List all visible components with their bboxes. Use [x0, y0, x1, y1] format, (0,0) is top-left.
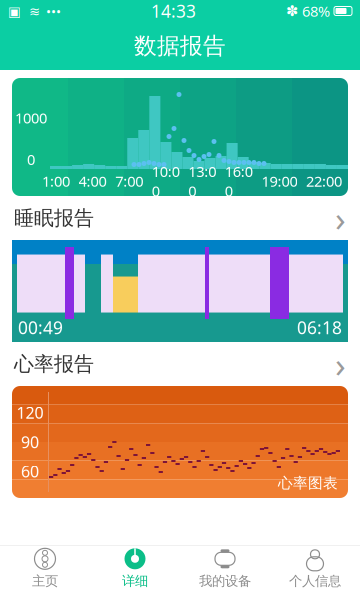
staticText: 120 — [16, 402, 43, 423]
button[interactable]: 睡眠报告 — [0, 196, 360, 240]
staticText: 0 — [27, 149, 35, 169]
staticText: 06:18 — [297, 316, 342, 339]
staticText: 个人信息 — [289, 573, 341, 589]
staticText: 详细 — [122, 573, 148, 589]
staticText: 60 — [21, 461, 39, 482]
button[interactable]: 心率报告 — [0, 342, 360, 386]
staticText: › — [335, 341, 346, 387]
staticText: 睡眠报告 — [14, 206, 94, 230]
staticText: 90 — [21, 431, 39, 453]
staticText: 16:00 — [225, 161, 253, 200]
staticText: 22:00 — [306, 171, 342, 191]
staticText: 数据报告 — [134, 32, 226, 60]
staticText: 4:00 — [79, 171, 107, 191]
staticText: 19:00 — [261, 171, 297, 191]
staticText: 心率图表 — [278, 474, 338, 492]
staticText: 7:00 — [115, 171, 143, 191]
staticText: 主页 — [32, 573, 58, 589]
staticText: 68% — [302, 1, 330, 21]
staticText: 我的设备 — [199, 573, 251, 589]
button[interactable]: 详细 — [90, 546, 180, 590]
staticText: 心率报告 — [14, 352, 94, 376]
staticText: ✽ — [286, 3, 298, 19]
button[interactable]: 个人信息 — [270, 546, 360, 590]
button[interactable]: 我的设备 — [180, 546, 270, 590]
button[interactable]: 主页 — [0, 546, 90, 590]
staticText: ▣ ≋ ••• — [8, 2, 61, 20]
staticText: 00:49 — [18, 316, 63, 339]
staticText: › — [335, 195, 346, 241]
staticText: 14:33 — [151, 0, 196, 22]
staticText: 1000 — [15, 108, 47, 127]
staticText: 10:00 — [152, 161, 180, 200]
staticText: 13:00 — [188, 161, 216, 200]
staticText: 1:00 — [42, 171, 70, 191]
